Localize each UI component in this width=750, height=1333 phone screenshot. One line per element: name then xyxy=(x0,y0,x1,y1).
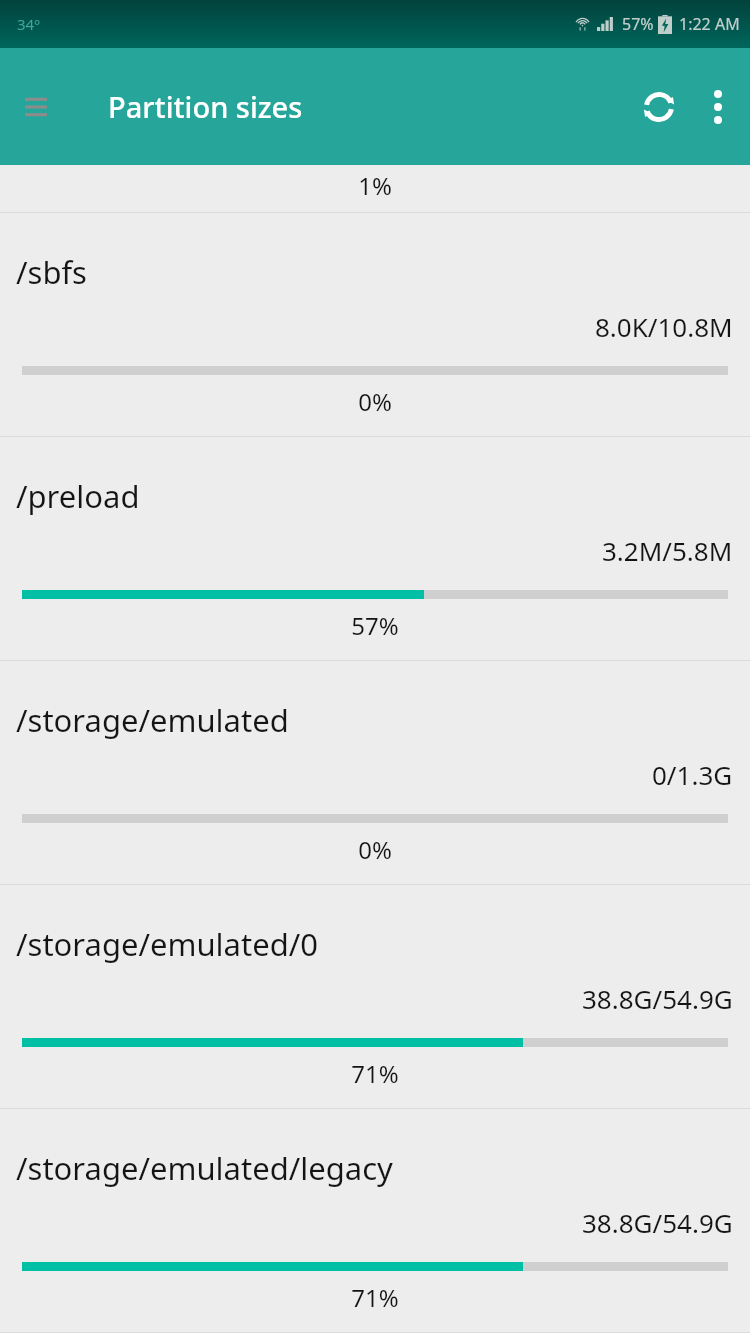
staticText: 34º xyxy=(17,14,40,34)
staticText: /storage/emulated/legacy xyxy=(16,1147,393,1189)
button[interactable]: /storage/emulated/legacy xyxy=(0,1109,750,1332)
staticText: /storage/emulated/0 xyxy=(16,923,319,965)
staticText: 38.8G/54.9G xyxy=(582,1205,733,1240)
staticText: 1% xyxy=(358,169,392,202)
button[interactable]: /sbfs xyxy=(0,213,750,436)
staticText: /storage/emulated xyxy=(16,699,289,741)
staticText: 0% xyxy=(358,385,392,418)
staticText: 71% xyxy=(351,1057,399,1090)
staticText: /sbfs xyxy=(16,251,87,293)
button[interactable]: /storage/emulated xyxy=(0,661,750,884)
staticText: 38.8G/54.9G xyxy=(582,981,733,1016)
button[interactable]: /preload xyxy=(0,437,750,660)
staticText: 57% xyxy=(622,13,654,35)
staticText: /preload xyxy=(16,475,140,517)
staticText: 0/1.3G xyxy=(652,757,733,792)
staticText: 1:22 AM xyxy=(679,13,740,35)
staticText: 71% xyxy=(351,1281,399,1314)
staticText: 3.2M/5.8M xyxy=(602,533,733,568)
button[interactable]: 1% xyxy=(0,165,750,212)
staticText: Partition sizes xyxy=(108,87,303,126)
button[interactable]: Open navigation drawer xyxy=(8,79,64,135)
button[interactable]: Refresh xyxy=(628,76,690,138)
staticText: 57% xyxy=(351,609,399,642)
button[interactable]: More options xyxy=(690,79,746,135)
staticText: 8.0K/10.8M xyxy=(595,309,733,344)
button[interactable]: /storage/emulated/0 xyxy=(0,885,750,1108)
staticText: 0% xyxy=(358,833,392,866)
